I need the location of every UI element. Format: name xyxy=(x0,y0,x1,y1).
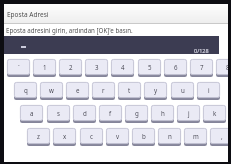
staticText: 2 xyxy=(69,63,73,71)
button[interactable]: h xyxy=(151,105,174,123)
staticText: c xyxy=(90,132,93,140)
staticText: e xyxy=(76,86,80,94)
staticText: 1 xyxy=(43,63,47,71)
button[interactable]: ` xyxy=(7,59,30,77)
staticText: r xyxy=(102,86,105,94)
button[interactable]: 8 xyxy=(216,59,231,77)
staticText: 0/128 xyxy=(194,47,209,54)
button[interactable]: r xyxy=(92,82,115,100)
button[interactable]: w xyxy=(40,82,63,100)
button[interactable]: Email address input xyxy=(4,36,219,54)
staticText: u xyxy=(181,86,185,94)
staticText: b xyxy=(142,132,146,140)
staticText: t xyxy=(128,86,131,94)
button[interactable]: 3 xyxy=(85,59,108,77)
staticText: y xyxy=(154,86,158,94)
staticText: z xyxy=(37,132,40,140)
staticText: i xyxy=(208,86,210,94)
staticText: 7 xyxy=(200,63,204,71)
button[interactable]: a xyxy=(20,105,43,123)
staticText: w xyxy=(49,86,54,94)
button[interactable] xyxy=(4,4,229,23)
staticText: g xyxy=(135,109,139,117)
button[interactable]: i xyxy=(197,82,220,100)
button[interactable]: 6 xyxy=(164,59,187,77)
button[interactable]: g xyxy=(125,105,148,123)
button[interactable]: j xyxy=(177,105,200,123)
staticText: Eposta adresini girin, ardından [OK]'e b… xyxy=(6,26,133,34)
button[interactable]: 7 xyxy=(190,59,213,77)
staticText: d xyxy=(83,109,87,117)
button[interactable]: z xyxy=(27,128,50,146)
button[interactable]: s xyxy=(47,105,70,123)
button[interactable]: u xyxy=(171,82,194,100)
staticText: 8 xyxy=(226,63,230,71)
staticText: f xyxy=(109,109,112,117)
button[interactable]: c xyxy=(80,128,103,146)
staticText: Eposta Adresi xyxy=(7,10,49,19)
staticText: a xyxy=(30,109,34,117)
staticText: x xyxy=(63,132,67,140)
staticText: q xyxy=(24,86,28,94)
button[interactable]: 5 xyxy=(138,59,161,77)
button[interactable]: 4 xyxy=(111,59,134,77)
button[interactable]: d xyxy=(73,105,96,123)
button[interactable]: 2 xyxy=(59,59,82,77)
staticText: m xyxy=(193,132,199,140)
staticText: j xyxy=(188,109,190,117)
staticText: ` xyxy=(18,63,20,71)
button[interactable]: b xyxy=(132,128,155,146)
button[interactable]: y xyxy=(144,82,167,100)
staticText: h xyxy=(161,109,165,117)
staticText: n xyxy=(168,132,172,140)
staticText: s xyxy=(57,109,60,117)
staticText: 5 xyxy=(148,63,152,71)
staticText: 3 xyxy=(95,63,99,71)
staticText: v xyxy=(116,132,120,140)
staticText: , xyxy=(221,132,223,140)
staticText: k xyxy=(213,109,217,117)
button[interactable]: n xyxy=(158,128,181,146)
button[interactable]: 1 xyxy=(33,59,56,77)
button[interactable]: f xyxy=(99,105,122,123)
button[interactable]: v xyxy=(106,128,129,146)
staticText: 6 xyxy=(174,63,178,71)
button[interactable]: m xyxy=(184,128,207,146)
button[interactable]: k xyxy=(203,105,226,123)
button[interactable]: e xyxy=(66,82,89,100)
button[interactable]: q xyxy=(14,82,37,100)
button[interactable]: x xyxy=(53,128,76,146)
button[interactable]: t xyxy=(118,82,141,100)
staticText: 4 xyxy=(121,63,125,71)
button[interactable]: , xyxy=(210,128,231,146)
